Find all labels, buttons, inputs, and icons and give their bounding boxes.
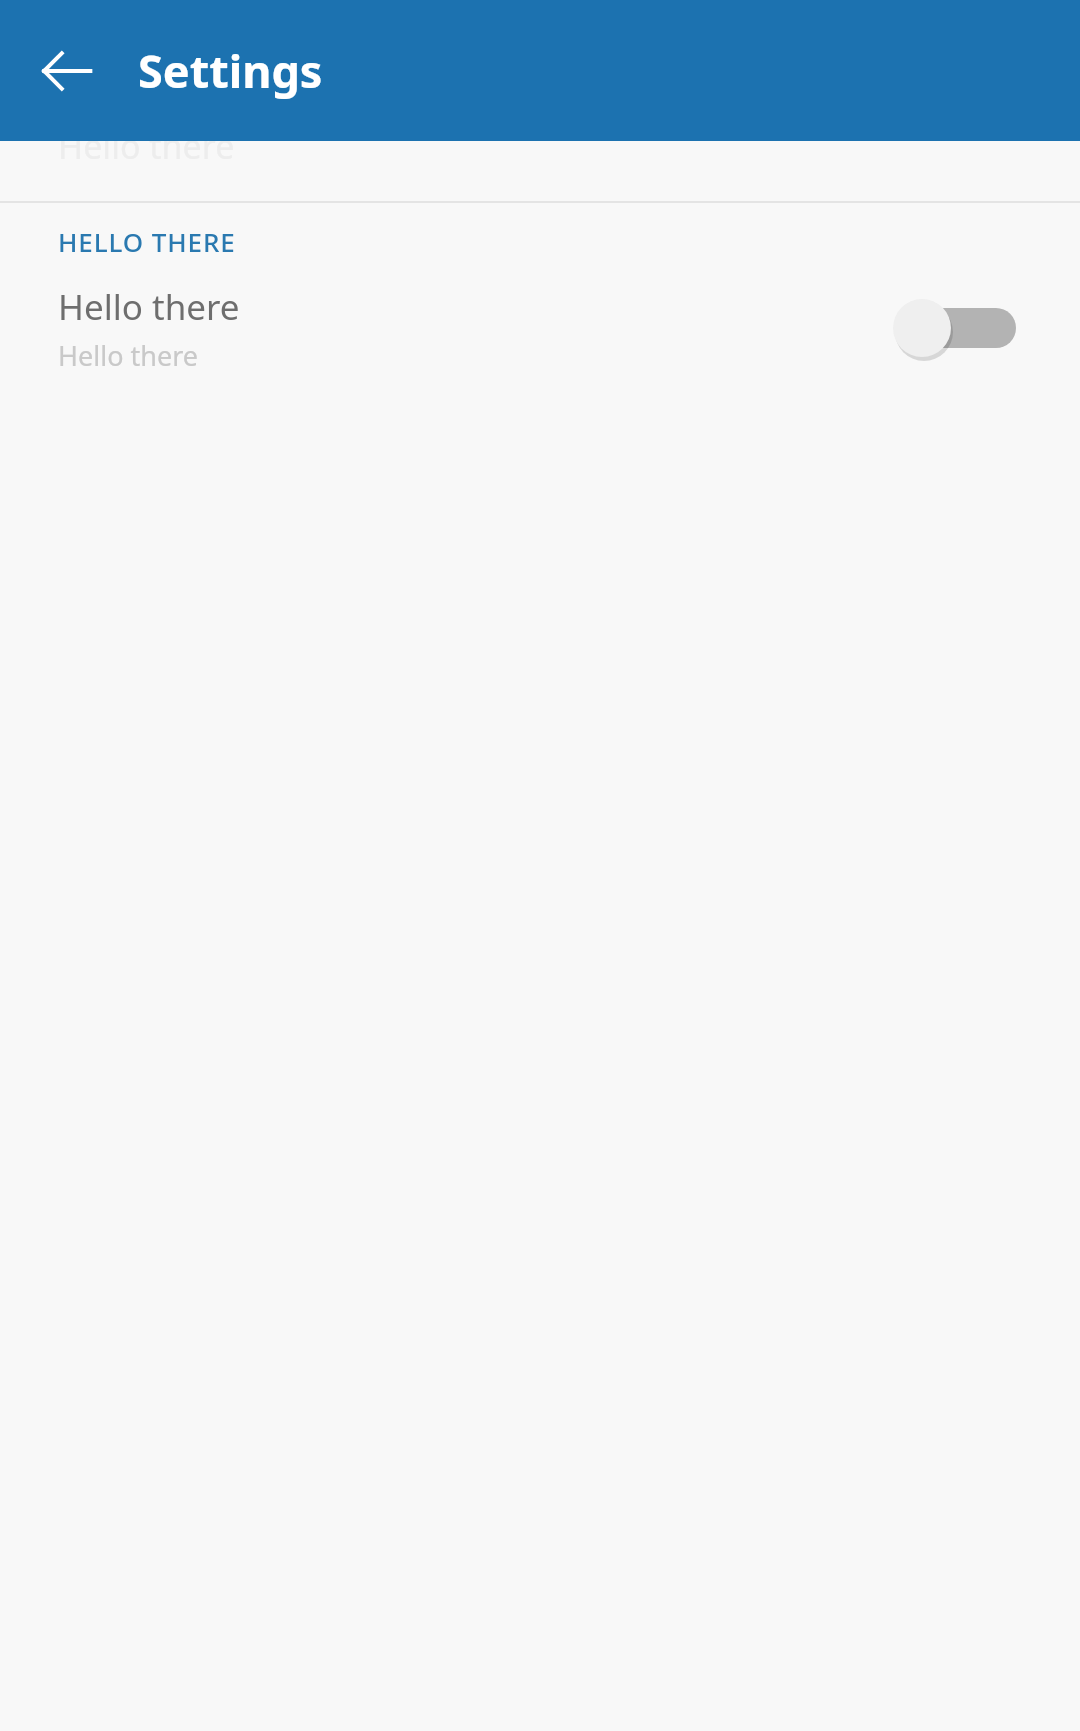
staticText: Hello there xyxy=(58,337,199,374)
staticText: Hello there xyxy=(58,283,240,331)
staticText: Settings xyxy=(138,40,323,101)
staticText: HELLO THERE xyxy=(58,224,236,259)
button[interactable]: Back xyxy=(22,26,112,116)
button[interactable]: Hello there toggle xyxy=(902,280,1022,376)
staticText: Hello there xyxy=(58,123,235,169)
button[interactable]: Hello there xyxy=(0,273,1080,383)
